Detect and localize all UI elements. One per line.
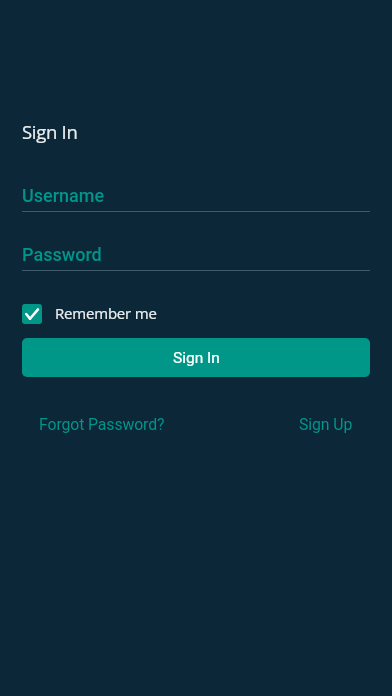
button[interactable]: Remember me bbox=[22, 303, 157, 324]
staticText: Sign Up bbox=[299, 415, 353, 434]
button[interactable]: Sign Up bbox=[287, 408, 341, 436]
button[interactable]: Sign In bbox=[22, 338, 370, 377]
staticText: Forgot Password? bbox=[39, 415, 165, 434]
staticText: Sign In bbox=[173, 349, 220, 367]
button[interactable]: Forgot Password? bbox=[27, 408, 153, 436]
staticText: Password bbox=[22, 244, 102, 265]
staticText: Remember me bbox=[55, 303, 157, 323]
staticText: Username bbox=[22, 185, 105, 206]
staticText: Sign In bbox=[22, 119, 78, 144]
